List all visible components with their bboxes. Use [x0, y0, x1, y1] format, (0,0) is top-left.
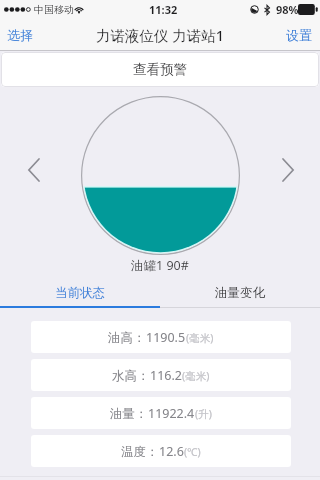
staticText: 11:32 — [149, 2, 178, 17]
staticText: (升) — [195, 407, 212, 421]
staticText: 油高： — [108, 330, 146, 346]
staticText: 油量变化 — [215, 285, 265, 301]
staticText: 116.2 — [150, 367, 182, 384]
staticText: 11922.4 — [148, 405, 195, 422]
staticText: 查看预警 — [133, 61, 187, 78]
staticText: 1190.5 — [146, 329, 186, 346]
staticText: 设置 — [286, 27, 312, 43]
button[interactable]: 当前状态 — [0, 280, 160, 306]
button[interactable]: 油高： — [31, 321, 291, 353]
staticText: 当前状态 — [55, 285, 105, 301]
button[interactable]: 设置 — [276, 22, 320, 48]
button[interactable]: 查看预警 — [1, 52, 319, 87]
staticText: 水高： — [112, 368, 150, 384]
button[interactable]: 水高： — [31, 359, 291, 391]
staticText: (毫米) — [182, 369, 210, 383]
button[interactable]: 选择 — [0, 22, 43, 48]
button[interactable]: 油量： — [31, 397, 291, 429]
staticText: 中国移动 — [34, 3, 74, 16]
staticText: 力诺液位仪 力诺站1 — [96, 25, 225, 45]
staticText: 选择 — [7, 27, 33, 43]
button[interactable]: 上一个油罐 — [18, 149, 48, 191]
staticText: 温度： — [121, 444, 159, 460]
staticText: (毫米) — [186, 331, 214, 345]
staticText: 油罐1 90# — [131, 257, 189, 274]
staticText: 油量： — [110, 406, 148, 422]
staticText: 98% — [276, 2, 299, 17]
button[interactable]: 油量变化 — [160, 280, 320, 306]
staticText: 12.6 — [159, 443, 184, 460]
button[interactable]: 下一个油罐 — [273, 149, 303, 191]
button[interactable]: 温度： — [31, 435, 291, 467]
staticText: (℃) — [184, 445, 201, 459]
